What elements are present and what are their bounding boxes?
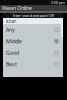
staticText: Middle — [6, 38, 22, 45]
button[interactable]: Any — [3, 24, 63, 35]
staticText: Kiwan Online — [2, 4, 32, 12]
button[interactable]: Middle — [3, 35, 63, 47]
button[interactable]: Good — [3, 47, 63, 58]
staticText: Best — [6, 61, 17, 68]
staticText: Enter word and push OK — [12, 13, 53, 18]
staticText: 5:00 pm — [51, 0, 65, 5]
staticText: star — [6, 17, 16, 25]
staticText: Any — [6, 26, 15, 33]
staticText: Good — [6, 49, 19, 56]
button[interactable]: Best — [3, 58, 63, 70]
